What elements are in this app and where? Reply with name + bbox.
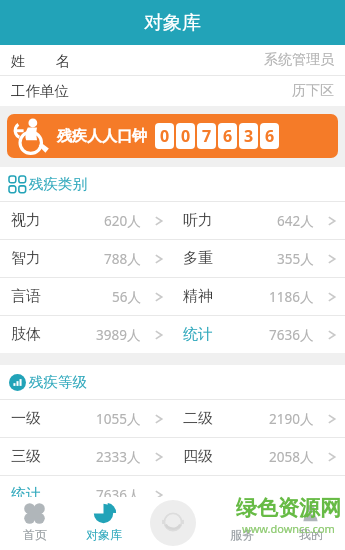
button[interactable]: 我的 [276, 497, 345, 550]
staticText: 我的 [299, 527, 323, 542]
staticText: 二级 [183, 409, 213, 428]
staticText: 3989人 [96, 326, 141, 344]
staticText: 7636人 [269, 326, 314, 344]
staticText: 355人 [277, 250, 314, 268]
staticText: 残疾类别 [29, 175, 87, 193]
staticText: 620人 [104, 212, 141, 230]
staticText: 7636人 [96, 486, 141, 504]
staticText: 56人 [112, 288, 141, 306]
staticText: 统计 [183, 325, 213, 344]
staticText: 绿色资源网 [236, 495, 341, 521]
staticText: 听力 [183, 211, 213, 230]
button[interactable]: 对象库 [69, 497, 138, 550]
staticText: 统计 [11, 485, 41, 504]
staticText: 残疾等级 [29, 373, 87, 391]
button[interactable]: 视力 [0, 202, 172, 239]
staticText: 视力 [11, 211, 41, 230]
button[interactable]: 统计 [172, 316, 345, 353]
staticText: 3 [244, 125, 254, 147]
button[interactable]: 智力 [0, 240, 172, 277]
staticText: 姓 名 [11, 50, 71, 70]
staticText: 1055人 [96, 410, 141, 428]
button[interactable]: 残疾等级 [0, 365, 345, 399]
staticText: 2058人 [269, 448, 314, 466]
staticText: www.downcc.com [242, 521, 335, 536]
staticText: 首页 [23, 527, 47, 542]
staticText: 对象库 [86, 527, 122, 542]
button[interactable]: 姓 名 [0, 45, 345, 75]
button[interactable]: 四级 [172, 438, 345, 475]
staticText: 三级 [11, 447, 41, 466]
staticText: 肢体 [11, 325, 41, 344]
staticText: 多重 [183, 249, 213, 268]
staticText: 2333人 [96, 448, 141, 466]
staticText: 一级 [11, 409, 41, 428]
button[interactable]: 残疾类别 [0, 167, 345, 201]
button[interactable]: 首页 [0, 497, 69, 550]
button[interactable]: 多重 [172, 240, 345, 277]
button[interactable]: 肢体 [0, 316, 172, 353]
staticText: 2190人 [269, 410, 314, 428]
staticText: 6 [265, 125, 275, 147]
staticText: 残疾人人口钟 [57, 127, 147, 146]
button[interactable]: 服务 [207, 497, 276, 550]
button[interactable]: 言语 [0, 278, 172, 315]
staticText: 642人 [277, 212, 314, 230]
staticText: 0 [160, 125, 170, 147]
staticText: 四级 [183, 447, 213, 466]
button[interactable]: 一级 [0, 400, 172, 437]
button[interactable]: 工作单位 [0, 76, 345, 106]
button[interactable]: 精神 [172, 278, 345, 315]
staticText: 7 [202, 125, 212, 147]
staticText: 智力 [11, 249, 41, 268]
staticText: 历下区 [292, 82, 334, 100]
button[interactable]: 残疾人人口钟 [7, 114, 338, 158]
staticText: 言语 [11, 287, 41, 306]
button[interactable]: 语音助手 [150, 500, 196, 546]
staticText: 工作单位 [11, 82, 69, 100]
button[interactable]: 统计 [0, 476, 172, 513]
staticText: 系统管理员 [264, 51, 334, 69]
button[interactable]: 三级 [0, 438, 172, 475]
staticText: 服务 [230, 527, 254, 542]
staticText: 1186人 [269, 288, 314, 306]
staticText: 6 [223, 125, 233, 147]
staticText: 精神 [183, 287, 213, 306]
staticText: 对象库 [144, 11, 201, 35]
staticText: 0 [181, 125, 191, 147]
button[interactable]: 二级 [172, 400, 345, 437]
button[interactable]: 听力 [172, 202, 345, 239]
staticText: 788人 [104, 250, 141, 268]
